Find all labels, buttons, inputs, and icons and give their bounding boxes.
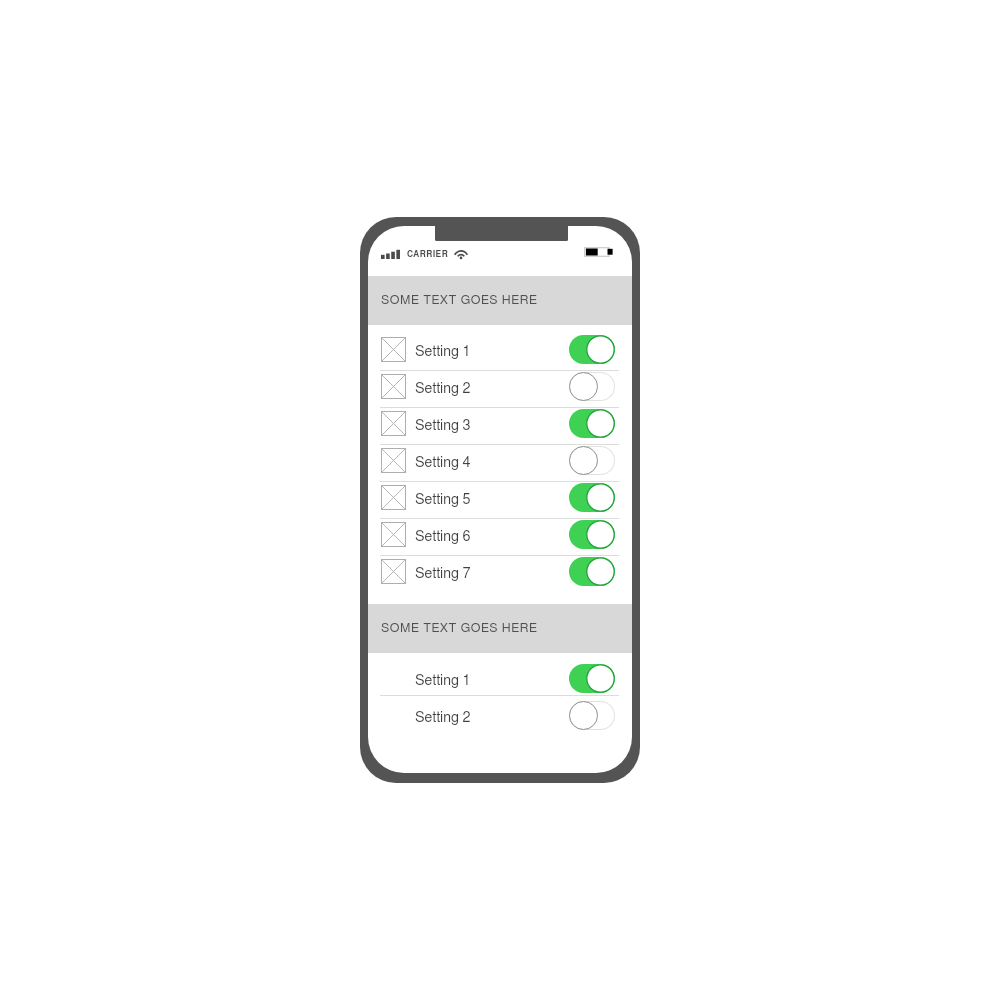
staticText: Setting 1 (415, 673, 471, 687)
staticText: Setting 2 (415, 710, 471, 724)
button[interactable]: Switch, off (569, 446, 615, 475)
button[interactable]: Setting 3 (368, 408, 632, 445)
button[interactable]: Switch, on (569, 520, 615, 549)
button[interactable]: Switch, on (569, 483, 615, 512)
button[interactable]: Switch, on (569, 409, 615, 438)
button[interactable]: Switch, off (569, 701, 615, 730)
button[interactable]: Setting 1 (368, 659, 632, 696)
button[interactable]: Setting 1 (368, 334, 632, 371)
staticText: Setting 2 (415, 381, 471, 395)
button[interactable]: Setting 2 (368, 371, 632, 408)
button[interactable]: Switch, on (569, 335, 615, 364)
staticText: Setting 1 (415, 344, 471, 358)
staticText: Setting 6 (415, 529, 471, 543)
button[interactable]: Setting 7 (368, 556, 632, 593)
staticText: SOME TEXT GOES HERE (381, 294, 538, 306)
button[interactable]: Setting 6 (368, 519, 632, 556)
button[interactable]: Switch, off (569, 372, 615, 401)
staticText: SOME TEXT GOES HERE (381, 622, 538, 634)
button[interactable]: Switch, on (569, 664, 615, 693)
button[interactable]: Setting 4 (368, 445, 632, 482)
staticText: Setting 4 (415, 455, 471, 469)
staticText: Setting 7 (415, 566, 471, 580)
button[interactable]: Switch, on (569, 557, 615, 586)
staticText: Setting 5 (415, 492, 471, 506)
staticText: CARRIER (407, 250, 449, 258)
button[interactable]: Setting 2 (368, 696, 632, 733)
button[interactable]: Setting 5 (368, 482, 632, 519)
staticText: Setting 3 (415, 418, 471, 432)
